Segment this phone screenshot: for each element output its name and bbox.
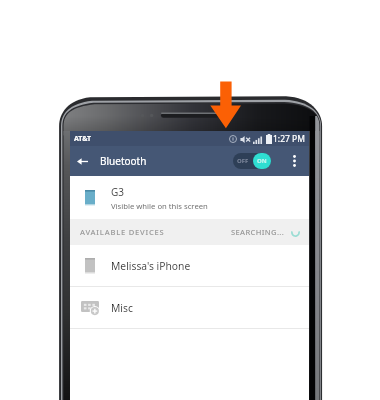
button[interactable]: Misc [70, 287, 309, 328]
staticText: Bluetooth [100, 154, 147, 168]
button[interactable]: Bluetooth toggle, on [233, 153, 271, 169]
staticText: G3 [111, 185, 124, 199]
button[interactable]: More options [286, 146, 302, 176]
button[interactable]: Back [70, 146, 94, 176]
staticText: 1:27 PM [273, 133, 305, 145]
staticText: OFF [237, 157, 249, 165]
staticText: Visible while on this screen [111, 201, 208, 211]
staticText: SEARCHING... [231, 227, 285, 237]
staticText: AVAILABLE DEVICES [80, 227, 165, 237]
staticText: AT&T [74, 134, 92, 144]
staticText: ON [257, 157, 267, 165]
staticText: Misc [111, 301, 133, 315]
button[interactable]: G3 [70, 176, 309, 219]
button[interactable]: Melissa's iPhone [70, 245, 309, 286]
staticText: Melissa's iPhone [111, 259, 191, 273]
